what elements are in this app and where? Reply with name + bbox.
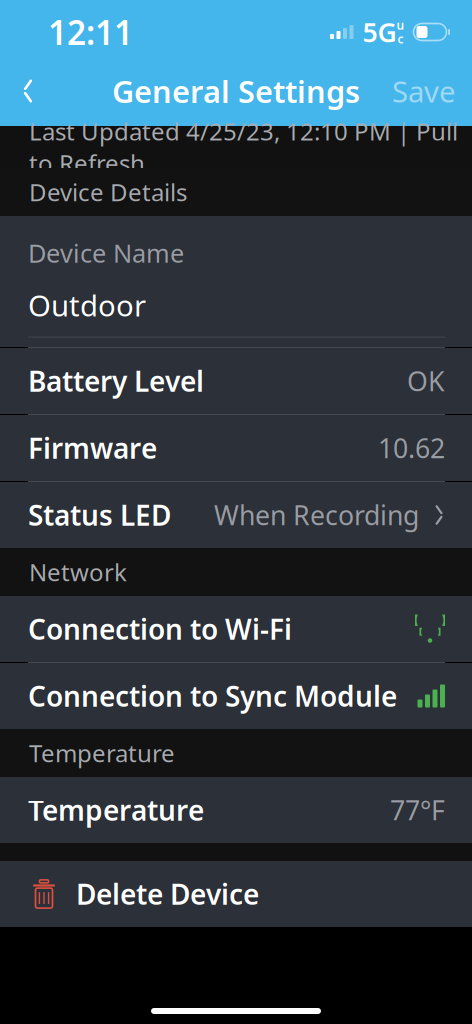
- staticText: OK: [407, 363, 445, 399]
- staticText: Network: [29, 556, 127, 588]
- button[interactable]: Connection to Wi-Fi: [0, 596, 472, 662]
- staticText: Outdoor: [28, 286, 146, 325]
- staticText: 12:11: [48, 10, 133, 54]
- staticText: c: [397, 31, 403, 47]
- staticText: Temperature: [29, 737, 175, 769]
- button[interactable]: Status LED: [0, 482, 472, 548]
- staticText: 10.62: [378, 430, 445, 466]
- staticText: When Recording: [214, 497, 419, 533]
- staticText: Status LED: [28, 496, 171, 534]
- staticText: General Settings: [112, 71, 360, 111]
- staticText: Connection to Sync Module: [28, 677, 397, 715]
- staticText: 77°F: [390, 792, 445, 828]
- staticText: Save: [392, 71, 456, 110]
- button[interactable]: Temperature: [0, 777, 472, 843]
- button[interactable]: Firmware: [0, 415, 472, 481]
- staticText: Connection to Wi-Fi: [28, 610, 292, 648]
- staticText: Device Details: [29, 176, 187, 208]
- staticText: Device Name: [28, 236, 184, 270]
- staticText: Delete Device: [76, 875, 259, 913]
- button[interactable]: Delete Device: [0, 861, 472, 927]
- button[interactable]: Battery Level: [0, 348, 472, 414]
- staticText: Battery Level: [28, 362, 204, 400]
- staticText: Temperature: [28, 791, 204, 829]
- button[interactable]: Save: [376, 64, 472, 118]
- staticText: u: [396, 17, 404, 33]
- staticText: 5G: [362, 14, 396, 50]
- button[interactable]: Back: [0, 64, 56, 118]
- staticText: Firmware: [28, 429, 157, 467]
- button[interactable]: Connection to Sync Module: [0, 663, 472, 729]
- staticText: Last Updated 4/25/23, 12:10 PM | Pull to…: [29, 115, 458, 179]
